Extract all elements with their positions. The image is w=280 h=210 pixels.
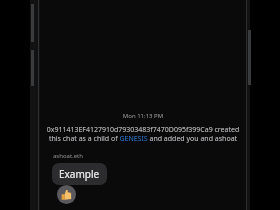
staticText: 0x911413EF4127910d79303483f7470D095f399C… <box>46 125 240 143</box>
staticText: Mon 11:13 PM <box>44 112 242 120</box>
button[interactable]: Thumbs up reaction <box>57 185 76 204</box>
staticText: Example <box>59 167 100 181</box>
button[interactable]: Example <box>52 163 107 185</box>
staticText: ashoat.eth <box>53 152 83 160</box>
